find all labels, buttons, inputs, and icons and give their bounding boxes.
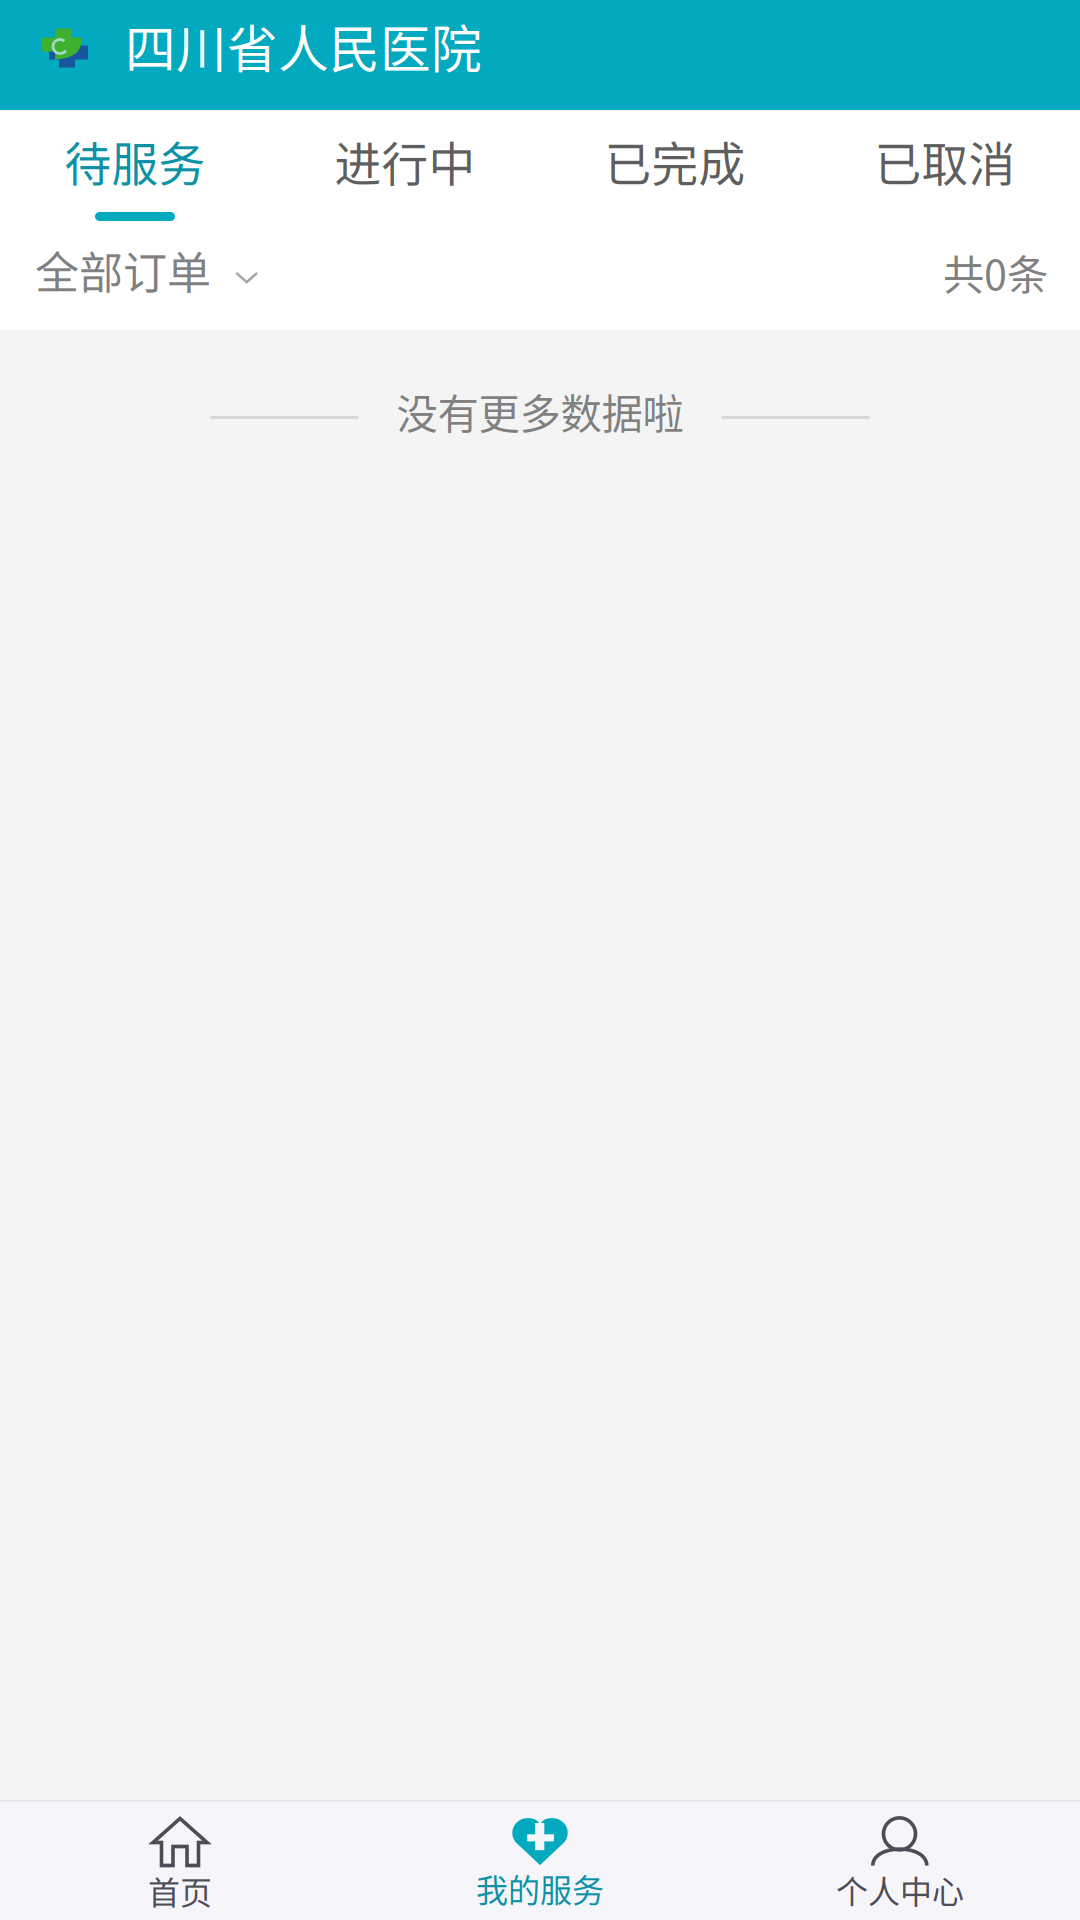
button[interactable]: 已完成: [540, 110, 810, 232]
button[interactable]: 个人中心: [720, 1813, 1080, 1920]
staticText: 四川省人民医院: [125, 9, 482, 83]
staticText: 已取消: [874, 127, 1015, 195]
staticText: 进行中: [334, 127, 475, 195]
staticText: 全部订单: [35, 238, 211, 302]
button[interactable]: 待服务: [0, 110, 270, 232]
staticText: 共0条: [943, 242, 1048, 302]
staticText: 个人中心: [836, 1867, 964, 1913]
staticText: 没有更多数据啦: [396, 381, 683, 441]
staticText: 我的服务: [476, 1865, 604, 1911]
staticText: 已完成: [604, 127, 745, 195]
button[interactable]: 全部订单: [0, 226, 278, 336]
staticText: 首页: [148, 1867, 212, 1914]
button[interactable]: 首页: [0, 1813, 360, 1920]
button[interactable]: 已取消: [810, 110, 1080, 232]
button[interactable]: 我的服务: [360, 1813, 720, 1920]
staticText: 待服务: [64, 127, 205, 195]
button[interactable]: 进行中: [270, 110, 540, 232]
